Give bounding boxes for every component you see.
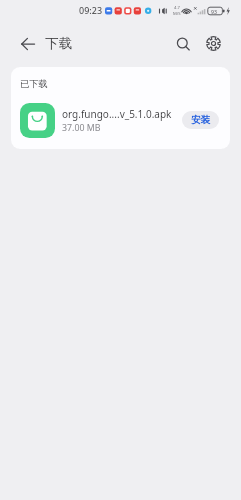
button[interactable]: org.fungo....v_5.1.0.apk — [11, 100, 230, 140]
staticText: org.fungo....v_5.1.0.apk — [62, 107, 172, 121]
staticText: 37.00 MB — [62, 122, 101, 134]
staticText: 下载 — [45, 35, 72, 52]
button[interactable]: Settings — [200, 30, 227, 57]
staticText: 4.7 — [174, 5, 180, 11]
staticText: 09:23 — [79, 4, 103, 16]
button[interactable]: Search — [170, 31, 197, 58]
staticText: M/S — [173, 11, 181, 17]
button[interactable]: Back — [14, 30, 41, 57]
staticText: 已下载 — [20, 78, 48, 90]
staticText: 93 — [211, 8, 217, 15]
staticText: 安装 — [191, 114, 210, 126]
button[interactable]: 安装 — [182, 111, 219, 129]
